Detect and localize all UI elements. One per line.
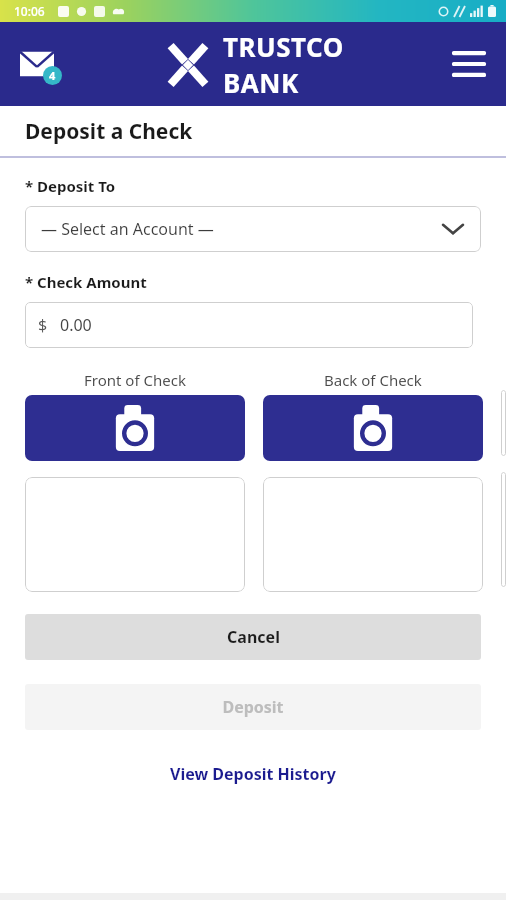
staticText: * Deposit To [25, 176, 116, 196]
staticText: 10:06 [14, 3, 45, 19]
button[interactable]: View Deposit History [162, 760, 344, 788]
button[interactable]: Cancel [25, 614, 481, 660]
button[interactable]: $ [25, 302, 473, 348]
button[interactable]: — Select an Account — [25, 206, 481, 252]
staticText: 4 [49, 68, 56, 83]
button[interactable]: Messages, 4 unread [14, 41, 60, 87]
staticText: Back of Check [324, 370, 422, 390]
staticText: Deposit [222, 696, 284, 718]
staticText: Front of Check [84, 370, 186, 390]
staticText: Deposit a Check [25, 117, 193, 146]
staticText: View Deposit History [170, 763, 336, 785]
button[interactable]: Menu [446, 41, 492, 87]
staticText: * Check Amount [25, 272, 147, 292]
staticText: 0.00 [60, 314, 92, 336]
staticText: Cancel [227, 626, 280, 648]
button[interactable]: Capture Back of Check [263, 395, 483, 461]
button[interactable]: Deposit [25, 684, 481, 730]
staticText: TRUSTCO [223, 29, 344, 64]
staticText: $ [38, 314, 48, 336]
button[interactable]: Capture Front of Check [25, 395, 245, 461]
staticText: BANK [223, 65, 299, 100]
staticText: — Select an Account — [41, 218, 214, 240]
